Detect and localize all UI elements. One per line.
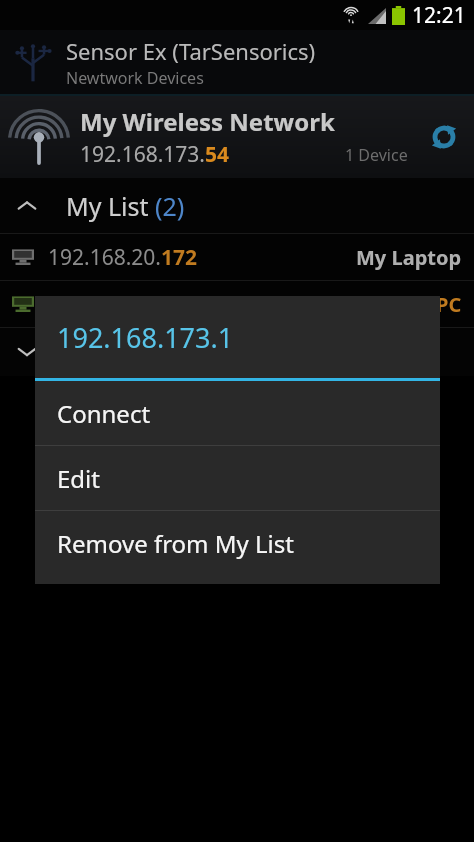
staticText: 192.168.20.172: [48, 243, 198, 272]
staticText: Newtwork Devices: [66, 67, 204, 89]
staticText: My List (2): [66, 189, 185, 223]
staticText: My Laptop: [356, 244, 462, 271]
button[interactable]: [0, 328, 474, 376]
staticText: My Wireless Network: [80, 105, 335, 138]
button[interactable]: Remove from My List: [35, 511, 440, 575]
button[interactable]: 192.168.20.172: [0, 234, 474, 280]
staticText: 12:21: [412, 1, 466, 30]
staticText: Remove from My List: [57, 527, 294, 560]
button[interactable]: 192.168.173.1: [0, 281, 474, 327]
button[interactable]: My Wireless Network: [0, 96, 474, 178]
staticText: Connect: [57, 397, 151, 430]
button[interactable]: Connect: [35, 381, 440, 445]
staticText: 192.168.173.54: [80, 140, 230, 169]
button[interactable]: My List (2): [0, 178, 474, 233]
button[interactable]: Edit: [35, 446, 440, 510]
staticText: Sensor Ex (TarSensorics): [66, 36, 316, 66]
staticText: 192.168.173.1: [48, 290, 186, 319]
button[interactable]: Refresh: [422, 115, 466, 159]
staticText: Edit: [57, 462, 100, 495]
staticText: PC: [436, 291, 462, 318]
staticText: 1 Device: [345, 144, 408, 166]
button[interactable]: Sensor Ex (TarSensorics): [0, 30, 474, 94]
staticText: 192.168.173.1: [57, 319, 234, 356]
